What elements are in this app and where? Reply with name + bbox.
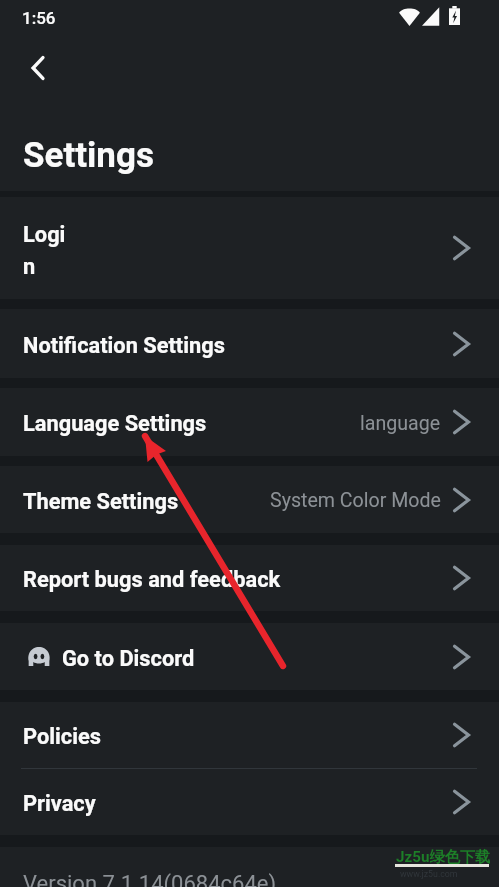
button[interactable]: Report bugs and feedback (0, 545, 499, 611)
staticText: System Color Mode (270, 489, 441, 512)
staticText: Go to Discord (62, 646, 195, 672)
button[interactable]: Policies (0, 702, 499, 768)
staticText: Login (23, 222, 71, 280)
staticText: Theme Settings (23, 489, 179, 515)
staticText: Language Settings (23, 411, 207, 437)
staticText: Policies (23, 724, 101, 750)
button[interactable]: Language Settings (0, 388, 499, 456)
button[interactable]: Privacy (0, 769, 499, 835)
staticText: Settings (23, 135, 154, 176)
button[interactable]: Theme Settings (0, 466, 499, 533)
staticText: language (360, 412, 441, 435)
staticText: 1:56 (22, 8, 56, 28)
staticText: Version 7.1.14(0684c64e) (23, 871, 277, 887)
button[interactable]: Go to Discord (0, 623, 499, 690)
staticText: Notification Settings (23, 333, 225, 359)
button[interactable]: Back (0, 36, 75, 93)
button[interactable]: Login (0, 197, 499, 299)
staticText: Privacy (23, 791, 96, 817)
staticText: Report bugs and feedback (23, 567, 281, 593)
button[interactable]: Notification Settings (0, 309, 499, 378)
staticText: www.jz5u.com (400, 869, 458, 879)
staticText: Jz5u绿色下载 (396, 847, 491, 866)
